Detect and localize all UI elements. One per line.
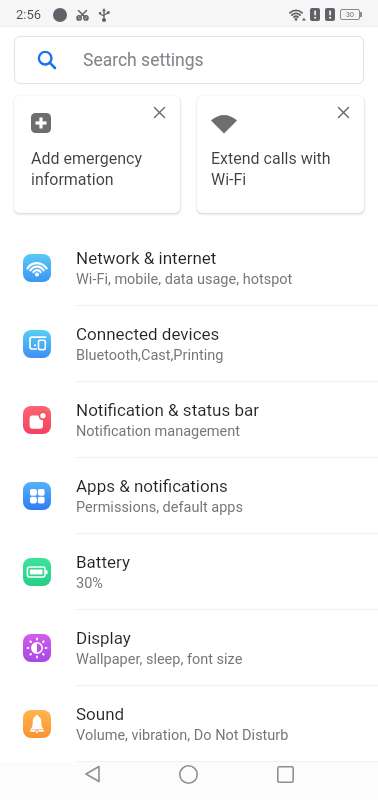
button[interactable]: Add emergency information	[14, 96, 180, 213]
staticText: Connected devices	[76, 324, 220, 344]
staticText: Apps & notifications	[76, 476, 228, 496]
button[interactable]	[147, 100, 171, 124]
button[interactable]: Battery	[0, 534, 378, 610]
button[interactable]: Extend calls with Wi-Fi	[197, 96, 364, 213]
staticText: Notification management	[76, 423, 241, 440]
button[interactable]: Notification & status bar	[0, 382, 378, 458]
button[interactable]: Connected devices	[0, 306, 378, 382]
button[interactable]	[237, 762, 334, 800]
staticText: Notification & status bar	[76, 400, 259, 420]
button[interactable]: Sound	[0, 686, 378, 762]
button[interactable]	[331, 100, 355, 124]
staticText: 30%	[76, 575, 103, 592]
staticText: Battery	[76, 552, 130, 572]
staticText: Extend calls with Wi-Fi	[211, 149, 331, 189]
staticText: Bluetooth,Cast,Printing	[76, 347, 224, 364]
staticText: Sound	[76, 704, 125, 724]
staticText: Network & internet	[76, 248, 217, 268]
staticText: Volume, vibration, Do Not Disturb	[76, 727, 289, 744]
staticText: Wi-Fi, mobile, data usage, hotspot	[76, 271, 293, 288]
button[interactable]: Apps & notifications	[0, 458, 378, 534]
button[interactable]: Network & internet	[0, 230, 378, 306]
staticText: Search settings	[83, 50, 204, 71]
button[interactable]: Search settings	[14, 36, 364, 84]
staticText: 2:56	[16, 7, 42, 22]
button[interactable]	[140, 762, 237, 800]
button[interactable]: Display	[0, 610, 378, 686]
staticText: Add emergency information	[31, 149, 142, 189]
staticText: Display	[76, 628, 131, 648]
staticText: Permissions, default apps	[76, 499, 243, 516]
staticText: 30	[346, 11, 354, 19]
button[interactable]	[44, 762, 140, 800]
staticText: Wallpaper, sleep, font size	[76, 651, 243, 668]
